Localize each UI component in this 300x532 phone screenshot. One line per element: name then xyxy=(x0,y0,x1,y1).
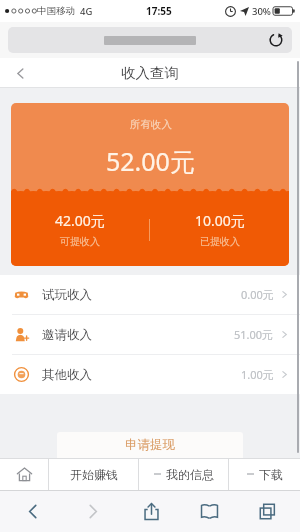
staticText: 1.00元 xyxy=(241,367,274,382)
button[interactable]: 所有收入 xyxy=(11,103,289,266)
staticText: 开始赚钱 xyxy=(70,467,118,482)
button[interactable]: Forward xyxy=(63,490,122,532)
button[interactable]: 我的信息 xyxy=(139,458,228,490)
staticText: 中国移动 xyxy=(37,5,75,17)
staticText: 其他收入 xyxy=(42,367,92,383)
button[interactable]: 开始赚钱 xyxy=(49,458,138,490)
button[interactable]: Home xyxy=(0,458,48,490)
staticText: 30% xyxy=(252,5,271,18)
staticText: 4G xyxy=(80,5,93,18)
button[interactable]: Bookmarks xyxy=(180,490,238,532)
staticText: 42.00元 xyxy=(55,211,105,230)
staticText: 可提收入 xyxy=(60,235,100,248)
staticText: 下载 xyxy=(259,467,283,482)
staticText: 17:55 xyxy=(146,4,172,18)
staticText: 申请提现 xyxy=(125,437,175,453)
staticText: 已提收入 xyxy=(200,235,240,248)
button[interactable]: Reload xyxy=(266,30,286,50)
staticText: 我的信息 xyxy=(166,467,214,482)
staticText: 10.00元 xyxy=(195,211,245,230)
button[interactable]: Reload xyxy=(8,27,292,53)
button[interactable]: Share xyxy=(122,490,180,532)
staticText: 52.00元 xyxy=(106,144,195,178)
staticText: 收入查询 xyxy=(121,64,179,82)
staticText: 0.00元 xyxy=(241,287,274,302)
staticText: 邀请收入 xyxy=(42,327,92,343)
button[interactable]: Back xyxy=(0,58,40,88)
button[interactable]: 申请提现 xyxy=(57,432,243,458)
button[interactable]: Back xyxy=(4,490,63,532)
button[interactable]: 试玩收入 xyxy=(0,275,300,314)
button[interactable]: Tabs xyxy=(238,490,296,532)
button[interactable]: 其他收入 xyxy=(0,355,300,394)
staticText: 51.00元 xyxy=(234,327,274,342)
button[interactable]: 邀请收入 xyxy=(0,315,300,354)
staticText: 所有收入 xyxy=(130,118,172,131)
button[interactable]: 下载 xyxy=(229,458,300,490)
staticText: 试玩收入 xyxy=(42,287,92,303)
